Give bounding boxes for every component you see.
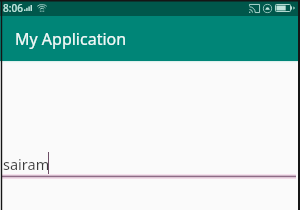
other: Battery <box>275 4 295 12</box>
button[interactable]: sairam <box>2 151 300 177</box>
other: Do not disturb <box>263 4 272 13</box>
staticText: sairam <box>3 154 50 174</box>
staticText: 8:06 <box>3 1 23 15</box>
other: Cast screen <box>249 4 260 13</box>
staticText: My Application <box>15 28 127 50</box>
